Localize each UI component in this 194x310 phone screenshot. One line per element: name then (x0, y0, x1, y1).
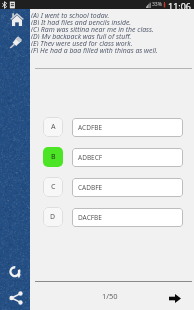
button[interactable]: C (43, 177, 63, 197)
staticText: 11:06 (168, 0, 192, 9)
staticText: CADBFE (78, 183, 103, 192)
staticText: ADBECF (78, 153, 103, 162)
staticText: 33% (152, 1, 162, 8)
button[interactable]: Refresh (9, 266, 23, 280)
staticText: (B) It had files and pencils inside. (31, 18, 132, 25)
button[interactable]: CADBFE (72, 178, 183, 197)
staticText: (C) Ram was sitting near me in the class… (31, 25, 154, 32)
staticText: (E) They were used for class work. (31, 39, 133, 46)
button[interactable]: B (43, 147, 63, 167)
staticText: (D) My backpack was full of stuff. (31, 32, 132, 39)
staticText: DACFBE (78, 213, 102, 222)
button[interactable]: ACDFBE (72, 118, 183, 137)
staticText: D (50, 212, 56, 222)
button[interactable]: DACFBE (72, 208, 183, 227)
staticText: A (51, 122, 56, 132)
button[interactable]: ADBECF (72, 148, 183, 167)
staticText: C (51, 182, 56, 192)
button[interactable]: D (43, 207, 63, 227)
button[interactable]: Next question (166, 289, 184, 307)
button[interactable]: Home (9, 12, 24, 27)
staticText: (A) I went to school today. (31, 11, 110, 18)
staticText: (F) He had a bag filled with things as w… (31, 46, 158, 53)
button[interactable]: A (43, 117, 63, 137)
staticText: 1/50 (102, 291, 118, 301)
staticText: ACDFBE (78, 123, 103, 132)
button[interactable]: Share (8, 290, 23, 305)
button[interactable]: Bookmark (9, 35, 23, 49)
staticText: B (51, 152, 56, 162)
